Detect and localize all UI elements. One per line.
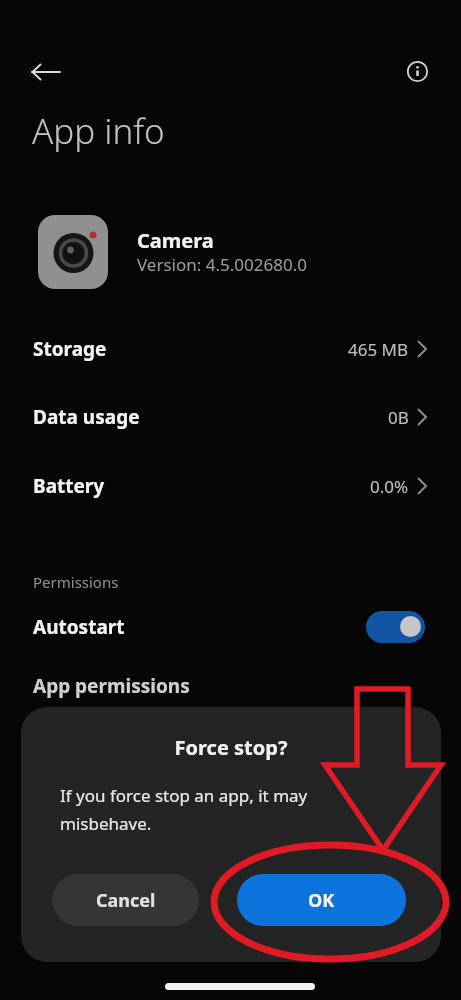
staticText: 465 MB (348, 338, 409, 361)
staticText: Data usage (33, 404, 140, 430)
staticText: Force stop? (21, 734, 441, 761)
button[interactable]: App permissions (0, 662, 461, 710)
staticText: Cancel (96, 888, 156, 913)
staticText: Permissions (33, 572, 119, 592)
staticText: Battery (33, 473, 105, 499)
staticText: 0.0% (370, 475, 409, 498)
staticText: If you force stop an app, it may misbeha… (60, 784, 308, 835)
staticText: Version: 4.5.002680.0 (137, 253, 307, 276)
button[interactable]: Storage (0, 315, 461, 383)
button[interactable] (366, 611, 425, 643)
button[interactable]: Cancel (52, 874, 199, 926)
staticText: OK (308, 888, 335, 913)
button[interactable]: Battery (0, 452, 461, 520)
staticText: App permissions (33, 673, 190, 699)
staticText: Autostart (33, 614, 125, 640)
button[interactable] (26, 58, 66, 86)
staticText: Camera (137, 227, 214, 254)
button[interactable] (403, 57, 431, 85)
button[interactable]: Data usage (0, 383, 461, 451)
staticText: Storage (33, 336, 107, 362)
button[interactable]: Autostart (0, 593, 461, 661)
staticText: App info (32, 107, 165, 155)
button[interactable]: OK (237, 874, 406, 926)
staticText: 0B (388, 406, 409, 429)
